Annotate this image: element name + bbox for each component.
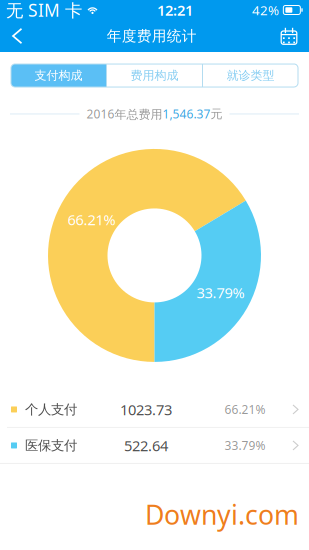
staticText: 42% [252,1,279,19]
staticText: 1023.73 [120,400,172,419]
staticText: 就诊类型 [226,68,274,83]
staticText: 个人支付 [25,401,77,418]
staticText: 522.64 [124,436,168,455]
staticText: 12:21 [157,0,193,20]
button[interactable]: Calendar [269,20,309,52]
staticText: 元 [210,107,222,121]
staticText: 支付构成 [34,68,82,83]
button[interactable]: Back [0,20,34,52]
staticText: 2016年总费用 [86,106,162,122]
staticText: Downyi.com [145,497,299,532]
button[interactable]: 个人支付 [0,392,309,427]
staticText: 医保支付 [25,437,77,454]
staticText: 66.21% [67,210,115,229]
staticText: 费用构成 [130,68,178,83]
staticText: 1,546.37 [162,106,210,122]
staticText: 年度费用统计 [107,27,197,45]
button[interactable]: 就诊类型 [203,64,298,87]
button[interactable]: 支付构成 [11,64,106,87]
staticText: 33.79% [196,283,244,302]
button[interactable]: 费用构成 [107,64,202,87]
staticText: 33.79% [224,437,265,453]
button[interactable]: 医保支付 [0,428,309,463]
staticText: 66.21% [224,401,265,417]
staticText: 无 SIM 卡 [6,0,82,21]
